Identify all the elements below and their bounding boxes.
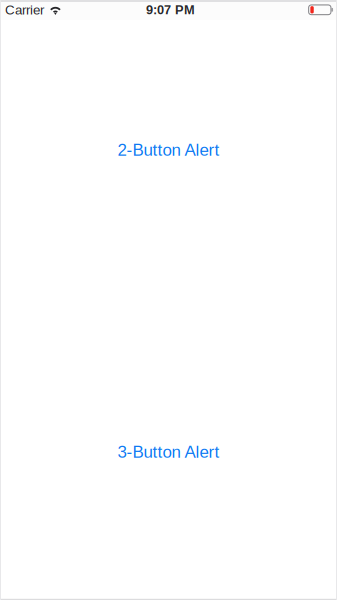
- staticText: 9:07 PM: [146, 3, 195, 17]
- staticText: 3-Button Alert: [117, 442, 219, 461]
- button[interactable]: 3-Button Alert: [88, 430, 248, 474]
- button[interactable]: 2-Button Alert: [88, 128, 248, 172]
- staticText: Carrier: [5, 2, 44, 17]
- staticText: 2-Button Alert: [117, 140, 219, 159]
